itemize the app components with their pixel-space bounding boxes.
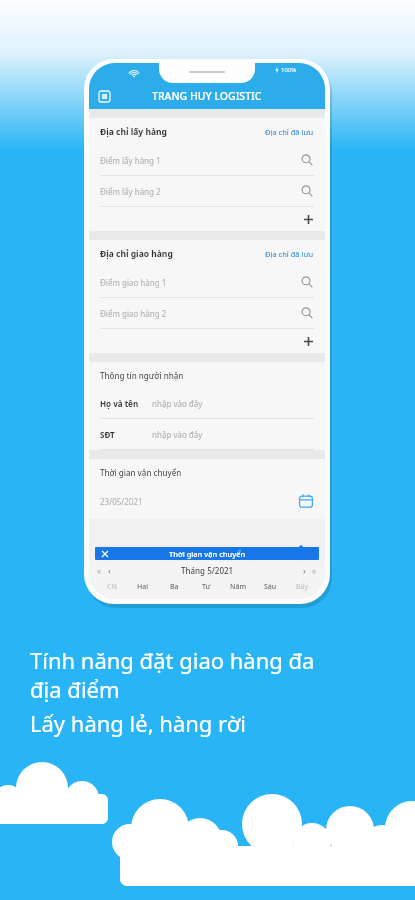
other: Search	[300, 275, 314, 289]
button[interactable]: Điểm giao hàng 2	[100, 298, 314, 328]
staticText: Sáu	[264, 582, 277, 592]
staticText: Địa chỉ giao hàng	[100, 248, 173, 260]
staticText: SĐT	[100, 429, 115, 440]
staticText: Bẩy	[296, 582, 309, 592]
staticText: Điểm lấy hàng 1	[100, 155, 161, 166]
staticText: nhập vào đây	[152, 398, 203, 409]
button[interactable]: Địa chỉ đã lưu	[265, 249, 314, 259]
button[interactable]: Điểm lấy hàng 1	[100, 145, 314, 175]
staticText: nhập vào đây	[152, 429, 203, 440]
staticText: Thời gian vận chuyển	[100, 467, 182, 478]
staticText: CN	[107, 582, 117, 592]
staticText: Họ và tên	[100, 398, 139, 409]
staticText: 100%	[281, 66, 297, 74]
staticText: Thời gian vận chuyển	[169, 549, 246, 559]
button[interactable]: Điểm giao hàng 1	[100, 267, 314, 297]
button[interactable]: Thời gian vận chuyển	[95, 547, 319, 560]
staticText: Ba	[170, 582, 179, 592]
staticText: Thông tin người nhận	[100, 370, 184, 381]
staticText: Điểm giao hàng 1	[100, 277, 167, 288]
staticText: Điểm lấy hàng 2	[100, 186, 161, 197]
button[interactable]: Add address	[100, 207, 314, 231]
staticText: Năm	[230, 582, 247, 592]
button[interactable]: Họ và tên	[100, 388, 314, 418]
button[interactable]: Close	[101, 550, 109, 558]
staticText: «	[97, 565, 102, 576]
staticText: »	[312, 565, 317, 576]
button[interactable]: Add address	[100, 329, 314, 353]
button[interactable]: SĐT	[100, 419, 314, 449]
staticText: Tư	[202, 582, 211, 592]
other: Search	[300, 306, 314, 320]
staticText: Địa chỉ đã lưu	[265, 249, 314, 259]
staticText: ‹	[108, 564, 111, 576]
staticText: Địa chỉ lấy hàng	[100, 126, 167, 138]
staticText: Lấy hàng lẻ, hàng rời	[30, 708, 246, 738]
staticText: Hai	[137, 582, 149, 592]
other: Pick date	[298, 493, 314, 509]
button[interactable]: Menu	[98, 90, 111, 103]
button[interactable]: Địa chỉ đã lưu	[265, 127, 314, 137]
staticText: Địa chỉ đã lưu	[265, 127, 314, 137]
staticText: ›	[303, 564, 306, 576]
staticText: TRANG HUY LOGISTIC	[152, 89, 262, 103]
other: Search	[300, 184, 314, 198]
button[interactable]: 23/05/2021	[100, 485, 314, 517]
staticText: Điểm giao hàng 2	[100, 308, 167, 319]
staticText: Tính năng đặt giao hàng đa địa điểm	[30, 645, 315, 704]
staticText: Tháng 5/2021	[181, 565, 234, 576]
staticText: 23/05/2021	[100, 496, 143, 507]
other: Search	[300, 153, 314, 167]
button[interactable]: Điểm lấy hàng 2	[100, 176, 314, 206]
